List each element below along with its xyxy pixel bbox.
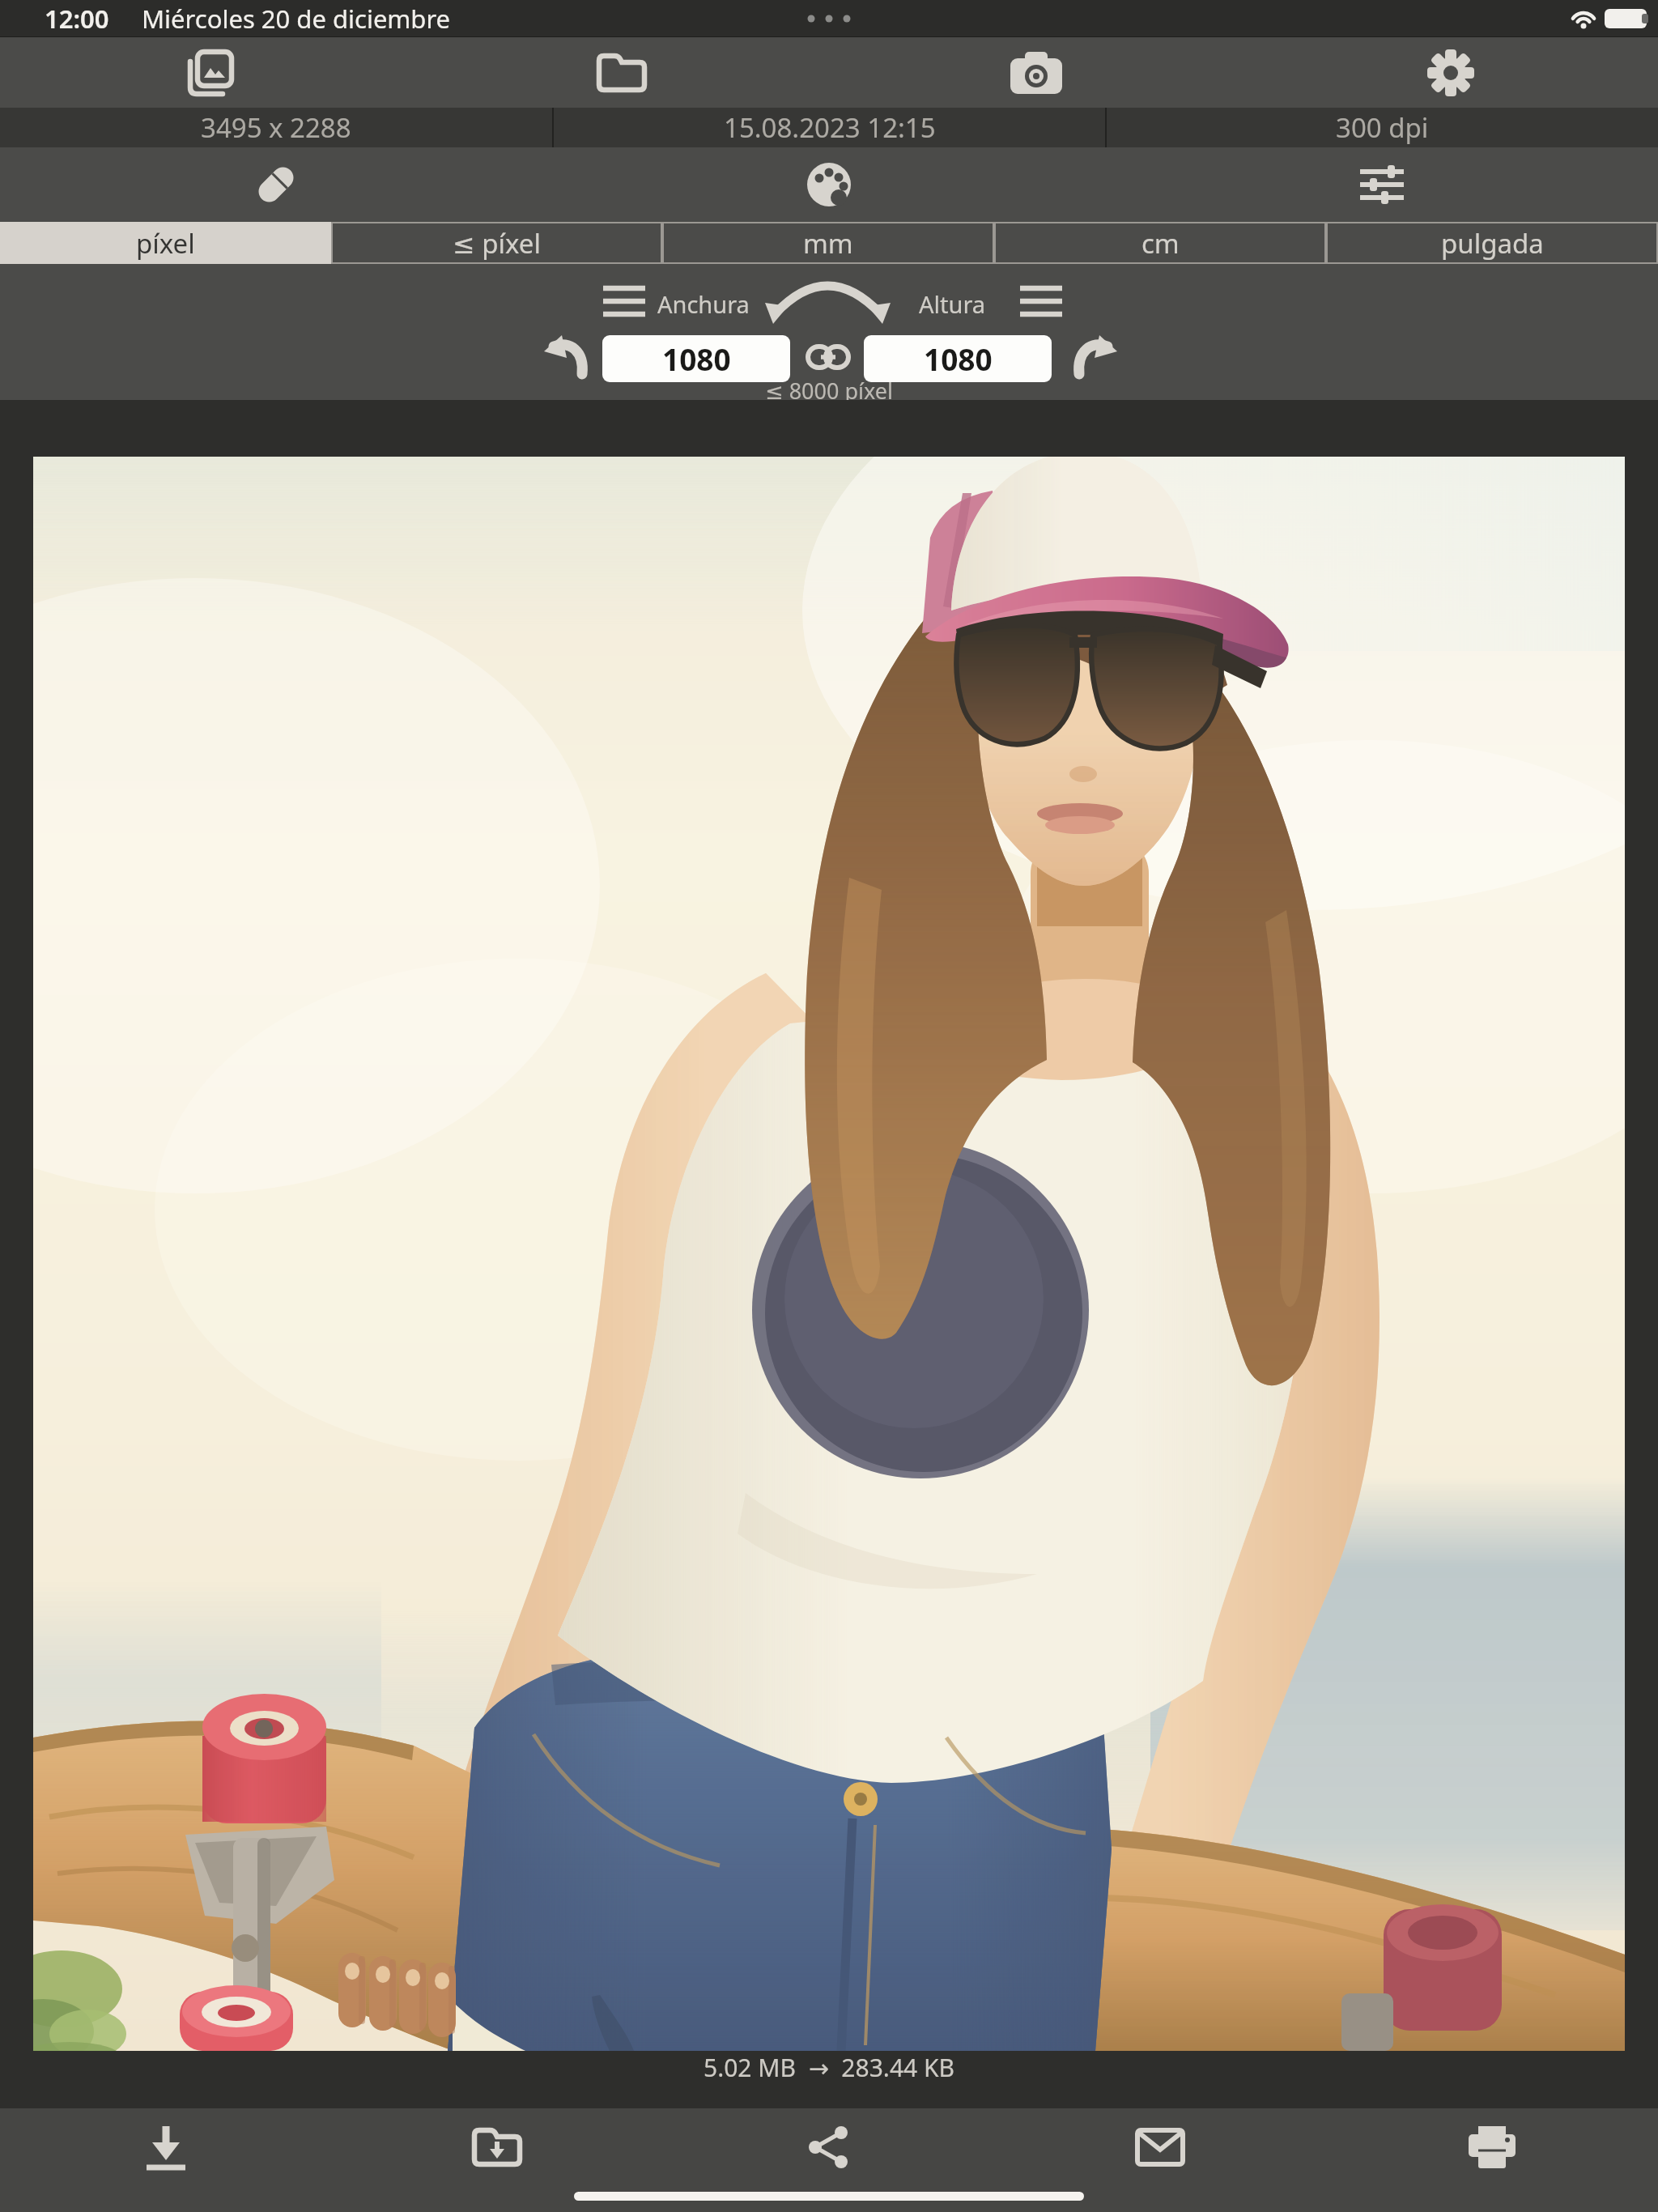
staticText: 5.02 MB → 283.44 KB	[704, 2051, 955, 2084]
staticText: Anchura	[657, 288, 750, 320]
staticText: Altura	[919, 288, 986, 320]
staticText: 12:00	[45, 2, 109, 36]
button[interactable]	[765, 274, 891, 324]
button[interactable]	[1411, 37, 1490, 108]
button[interactable]	[544, 335, 586, 376]
button[interactable]: 300 dpi	[1107, 108, 1658, 147]
button[interactable]	[793, 2114, 864, 2180]
staticText: mm	[803, 225, 853, 262]
button[interactable]	[808, 343, 848, 372]
button[interactable]: 3495 x 2288	[0, 108, 552, 147]
button[interactable]: 1080	[864, 335, 1052, 382]
button[interactable]	[167, 37, 248, 108]
button[interactable]	[236, 151, 316, 218]
button[interactable]	[790, 150, 868, 219]
button[interactable]	[1344, 153, 1420, 216]
button[interactable]	[603, 285, 645, 317]
button[interactable]	[994, 40, 1078, 106]
button[interactable]	[456, 2115, 538, 2180]
button[interactable]: 1080	[602, 335, 790, 382]
staticText: píxel	[136, 225, 195, 262]
button[interactable]	[1121, 2118, 1199, 2176]
button[interactable]	[1075, 335, 1117, 376]
button[interactable]: ≤ píxel	[331, 222, 662, 264]
staticText: Miércoles 20 de diciembre	[142, 2, 451, 36]
staticText: pulgada	[1441, 225, 1544, 262]
staticText: 300 dpi	[1336, 109, 1429, 146]
staticText: 1080	[662, 338, 731, 379]
staticText: ≤ píxel	[453, 225, 541, 262]
staticText: 15.08.2023 12:15	[724, 109, 936, 146]
button[interactable]	[33, 457, 1625, 2051]
button[interactable]	[1452, 2114, 1532, 2180]
button[interactable]: mm	[662, 222, 994, 264]
button[interactable]: pulgada	[1326, 222, 1658, 264]
button[interactable]	[1020, 285, 1062, 317]
staticText: 3495 x 2288	[201, 109, 351, 146]
button[interactable]: píxel	[0, 222, 331, 264]
staticText: 1080	[924, 338, 993, 379]
button[interactable]: 15.08.2023 12:15	[554, 108, 1105, 147]
button[interactable]: cm	[994, 222, 1326, 264]
button[interactable]	[580, 40, 663, 105]
staticText: ≤ 8000 píxel	[765, 376, 893, 400]
button[interactable]	[129, 2112, 203, 2182]
staticText: cm	[1141, 225, 1180, 262]
